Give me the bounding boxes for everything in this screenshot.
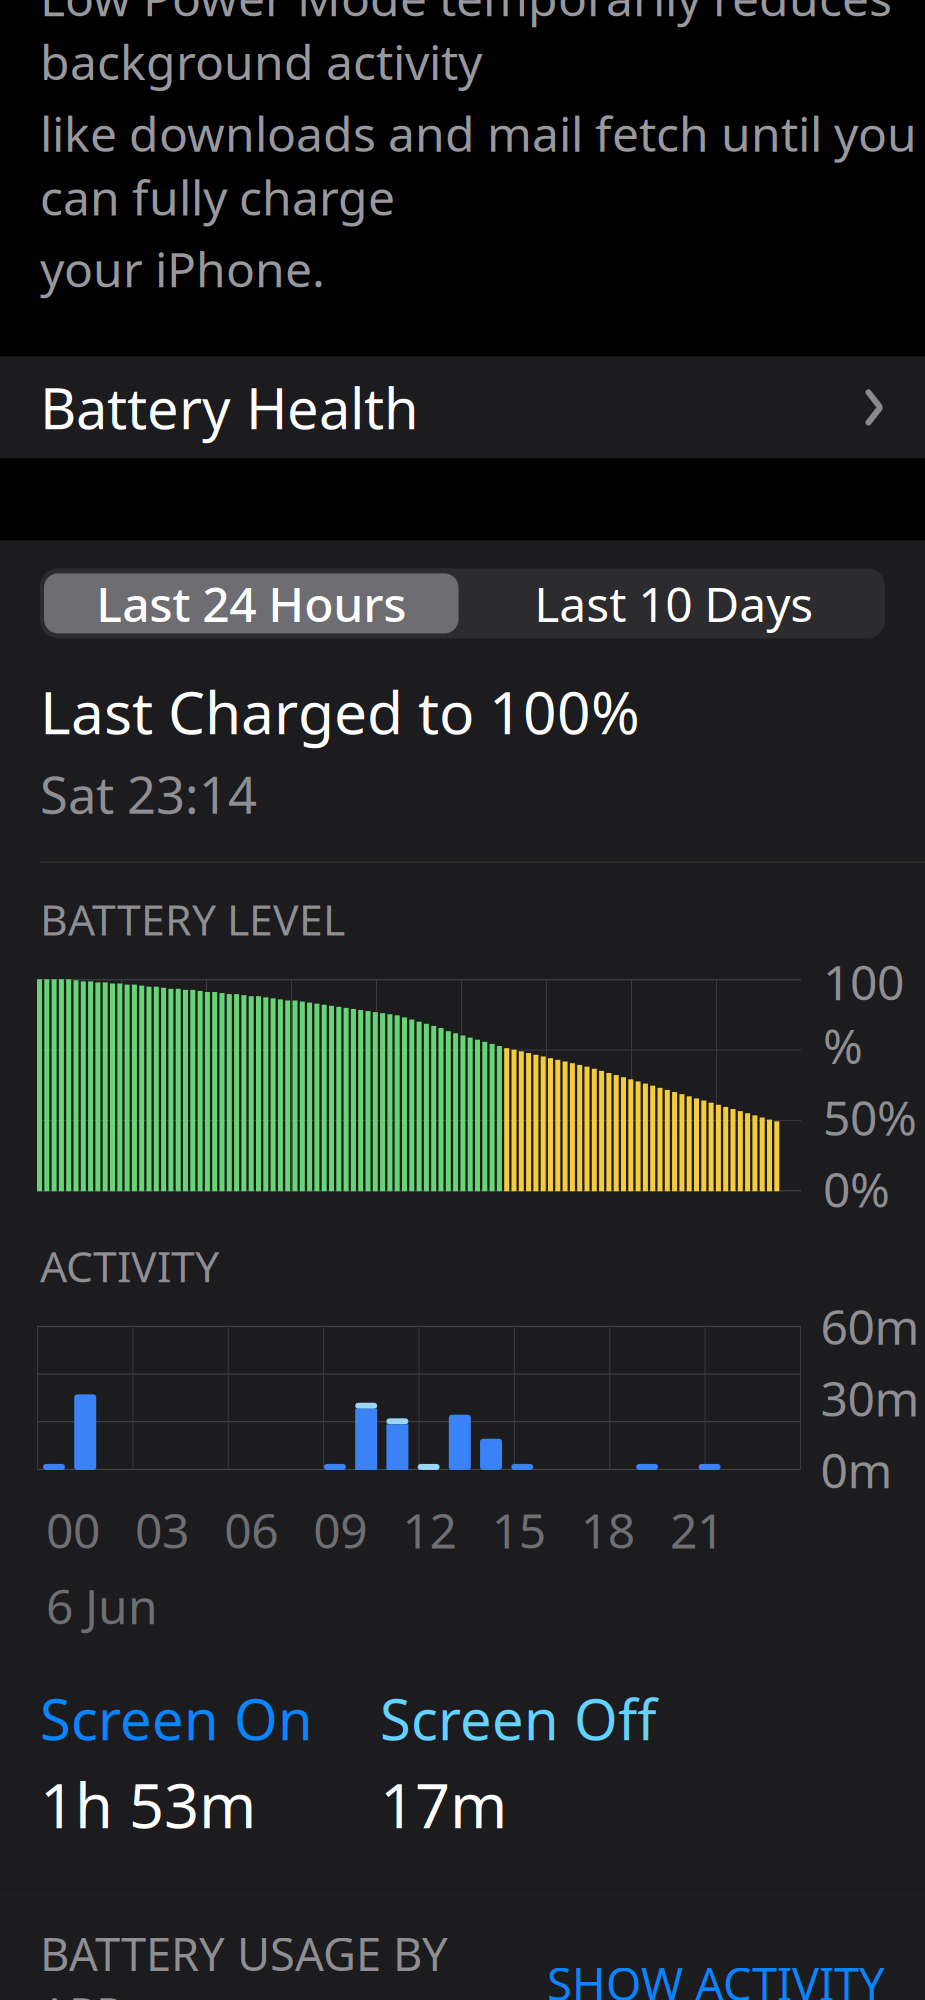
staticText: 06: [224, 1498, 278, 1562]
staticText: 12: [402, 1498, 456, 1562]
staticText: 03: [135, 1498, 189, 1562]
staticText: 00: [46, 1498, 100, 1562]
staticText: Battery Health: [40, 370, 419, 445]
staticText: 60m: [820, 1294, 919, 1358]
staticText: Sat 23:14: [40, 760, 257, 828]
staticText: ACTIVITY: [40, 1237, 219, 1294]
staticText: 0%: [823, 1157, 890, 1221]
staticText: Low Power Mode temporarily reduces backg…: [40, 0, 892, 93]
staticText: Screen On: [40, 1681, 313, 1756]
staticText: Last Charged to 100%: [40, 672, 640, 750]
staticText: Last 10 Days: [534, 572, 813, 635]
button[interactable]: SHOW ACTIVITY: [547, 1947, 885, 2000]
staticText: 21: [670, 1498, 724, 1562]
staticText: 15: [492, 1498, 546, 1562]
staticText: 1h 53m: [40, 1764, 256, 1845]
staticText: 100%: [823, 950, 904, 1077]
staticText: BATTERY USAGE BY APP: [40, 1923, 448, 2000]
staticText: 0m: [820, 1438, 892, 1501]
staticText: like downloads and mail fetch until you …: [40, 101, 917, 229]
staticText: BATTERY LEVEL: [40, 891, 345, 947]
staticText: SHOW ACTIVITY: [547, 1953, 885, 2000]
button[interactable]: Battery Health: [0, 356, 925, 458]
button[interactable]: Last 24 Hours: [40, 569, 462, 637]
staticText: 09: [313, 1498, 367, 1562]
button[interactable]: Last 10 Days: [462, 569, 885, 637]
staticText: Last 24 Hours: [96, 572, 406, 635]
staticText: Screen Off: [380, 1681, 657, 1756]
staticText: 30m: [820, 1366, 919, 1430]
staticText: 6 Jun: [46, 1574, 158, 1637]
staticText: 50%: [823, 1085, 917, 1149]
staticText: 18: [581, 1498, 635, 1562]
staticText: your iPhone.: [40, 237, 325, 300]
staticText: 17m: [380, 1764, 507, 1845]
